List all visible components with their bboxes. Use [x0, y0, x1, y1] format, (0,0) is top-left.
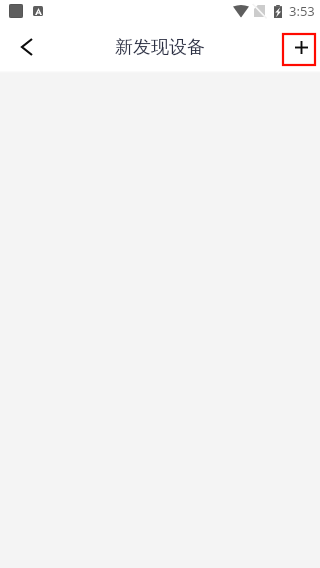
button[interactable]: Back [10, 30, 44, 64]
button[interactable]: Add device [283, 34, 315, 65]
staticText: 新发现设备 [115, 36, 205, 59]
staticText: 3:53 [289, 2, 315, 20]
